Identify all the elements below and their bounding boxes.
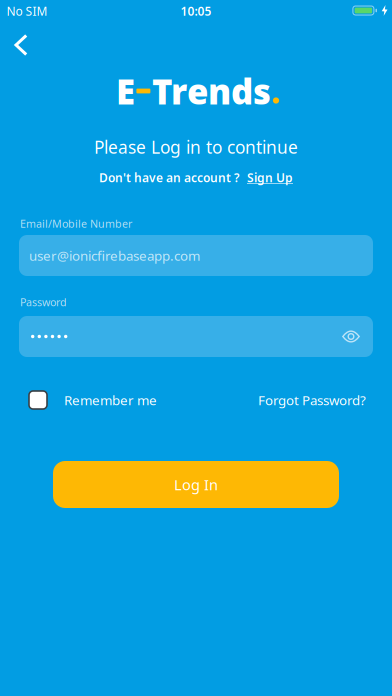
staticText: Sign Up	[247, 169, 293, 185]
button[interactable]: Back	[5, 29, 37, 61]
button[interactable]: Sign Up	[247, 169, 293, 185]
button[interactable]: Remember me	[29, 391, 157, 409]
staticText: Log In	[174, 475, 218, 494]
staticText: 10:05	[180, 3, 211, 19]
staticText: E	[116, 68, 135, 114]
staticText: Email/Mobile Number	[20, 216, 132, 231]
staticText: Trends	[152, 68, 271, 114]
staticText: user@ionicfirebaseapp.com	[29, 247, 200, 264]
staticText: Password	[20, 295, 67, 309]
staticText: Remember me	[64, 391, 157, 409]
staticText: Please Log in to continue	[94, 135, 298, 158]
button[interactable]: Log In	[53, 461, 339, 508]
staticText: Don't have an account ?	[99, 169, 240, 185]
staticText: Forgot Password?	[258, 391, 366, 409]
button[interactable]: Show password	[342, 331, 373, 342]
button[interactable]: Forgot Password?	[258, 391, 366, 409]
staticText: No SIM	[6, 3, 47, 19]
